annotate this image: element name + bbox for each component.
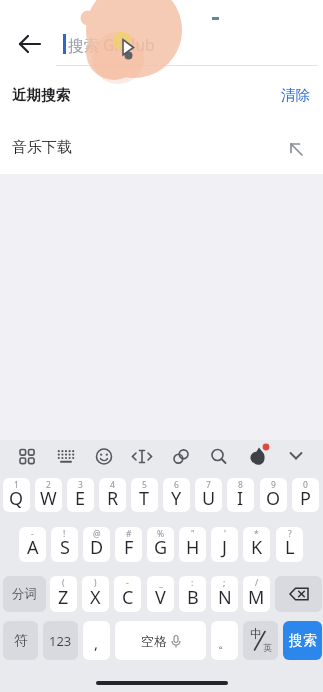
button[interactable]: # [115,527,142,562]
button[interactable]: 7 [195,478,222,512]
button[interactable]: ) [82,576,109,612]
staticText: ( [62,577,65,589]
button[interactable]: 1 [3,478,30,512]
staticText: 8 [238,479,243,491]
staticText: G [154,535,168,560]
staticText: W [40,486,57,511]
button[interactable]: 中 [243,621,278,660]
button[interactable]: 2 [35,478,62,512]
staticText: A [27,535,39,560]
button[interactable]: " [179,527,206,562]
staticText: J [222,535,227,560]
button[interactable]: 。 [211,621,238,660]
button[interactable]: ' [211,527,238,562]
staticText: X [90,585,101,610]
staticText: P [300,486,311,511]
staticText: ; [223,577,226,589]
staticText: V [155,585,166,610]
staticText: * [254,528,259,540]
staticText: ' [224,528,226,540]
staticText: @ [93,528,101,540]
staticText: S [60,535,70,560]
button[interactable]: * [243,527,270,562]
button[interactable] [161,440,201,473]
button[interactable] [275,576,322,612]
staticText: 0 [303,479,308,491]
staticText: 123 [49,632,72,650]
button[interactable]: 3 [67,478,94,512]
staticText: 中 [250,626,262,641]
button[interactable]: ! [51,527,78,562]
staticText: 2 [46,479,51,491]
button[interactable]: 清除 [272,80,318,110]
staticText: Z [58,585,69,610]
staticText: R [107,486,119,511]
staticText: ! [63,528,66,540]
button[interactable]: 0 [292,478,319,512]
staticText: T [139,486,150,511]
staticText: 5 [142,479,147,491]
button[interactable]: 符 [3,621,38,660]
button[interactable]: - [19,527,46,562]
button[interactable]: 4 [99,478,126,512]
staticText: B [187,585,199,610]
staticText: # [126,528,132,540]
staticText: H [186,535,200,560]
button[interactable]: ? [276,527,303,562]
button[interactable]: : [179,576,206,612]
staticText: Y [171,486,182,511]
button[interactable]: , [83,621,110,660]
staticText: 6 [174,479,179,491]
staticText: 1 [14,479,19,491]
staticText: 7 [206,479,211,491]
button[interactable]: 8 [227,478,254,512]
button[interactable]: @ [83,527,110,562]
staticText: 9 [271,479,276,491]
button[interactable]: 空格 [115,621,206,660]
button[interactable] [10,24,50,64]
button[interactable]: - [114,576,141,612]
button[interactable] [199,440,239,473]
button[interactable] [46,440,86,473]
button[interactable]: 6 [163,478,190,512]
staticText: ) [94,577,97,589]
button[interactable]: ; [211,576,238,612]
staticText: 空格 [141,633,167,649]
button[interactable]: 分词 [3,576,46,612]
button[interactable]: / [243,576,270,612]
button[interactable] [7,440,47,473]
staticText: 搜索 [289,632,317,650]
staticText: U [202,486,216,511]
staticText: I [237,486,244,511]
button[interactable]: 123 [43,621,78,660]
button[interactable] [276,440,316,473]
staticText: 清除 [281,86,310,104]
staticText: M [248,585,265,610]
staticText: % [157,528,165,540]
button[interactable]: ( [50,576,77,612]
button[interactable]: _ [147,576,174,612]
button[interactable] [122,440,162,473]
staticText: - [31,528,34,540]
staticText: 符 [14,632,28,649]
staticText: K [251,535,263,560]
staticText: D [90,535,104,560]
staticText: _ [159,577,163,589]
button[interactable]: 9 [260,478,287,512]
staticText: , [94,633,99,653]
staticText: 英 [263,642,272,653]
staticText: 搜索 GitHub [68,34,155,55]
button[interactable] [84,440,124,473]
button[interactable]: 5 [131,478,158,512]
staticText: N [218,585,232,610]
button[interactable] [238,440,278,473]
staticText: - [126,577,129,589]
staticText: C [122,585,134,610]
button[interactable]: 搜索 [283,621,322,660]
staticText: 4 [110,479,115,491]
button[interactable]: 音乐下载 [0,121,323,174]
staticText: 。 [218,635,231,651]
button[interactable]: % [147,527,174,562]
staticText: / [255,577,259,589]
staticText: E [75,486,86,511]
